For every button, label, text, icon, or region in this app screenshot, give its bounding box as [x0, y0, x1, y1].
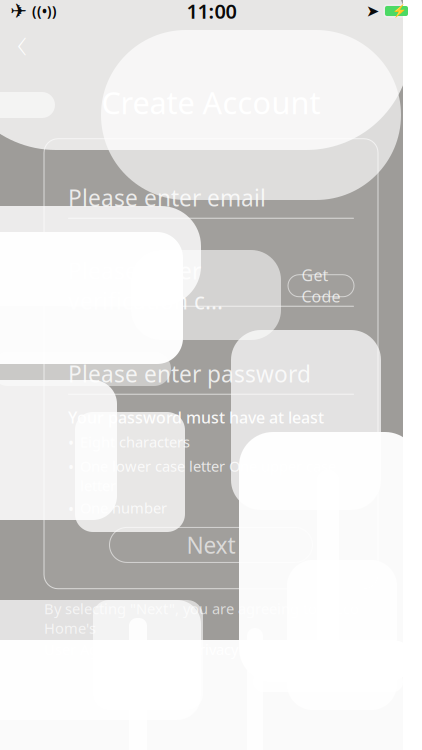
staticText: • — [68, 498, 74, 519]
staticText: ‹ — [17, 12, 27, 72]
button[interactable]: Next — [109, 527, 312, 562]
staticText: Please enter verification c... — [68, 256, 223, 316]
staticText: Eight characters — [80, 432, 190, 451]
staticText: ➤ — [366, 2, 379, 20]
staticText: Next — [186, 530, 235, 560]
staticText: Create Account — [101, 82, 320, 123]
staticText: • — [68, 456, 74, 477]
staticText: Your password must have at least — [68, 407, 324, 428]
staticText: • — [68, 432, 74, 453]
staticText: ⚡ — [392, 4, 407, 18]
staticText: Get Code — [301, 264, 340, 307]
button[interactable]: Get Code — [288, 275, 354, 297]
staticText: ✈ — [10, 0, 27, 22]
staticText: 11:00 — [186, 0, 236, 24]
staticText: Please enter email — [68, 183, 266, 213]
staticText: One lower case letter One upper case let… — [80, 456, 336, 495]
staticText: One number — [80, 498, 167, 518]
staticText: By selecting "Next", you are agreeing to… — [44, 599, 359, 638]
staticText: ((•)) — [32, 2, 57, 20]
staticText: Please enter password — [68, 359, 311, 389]
